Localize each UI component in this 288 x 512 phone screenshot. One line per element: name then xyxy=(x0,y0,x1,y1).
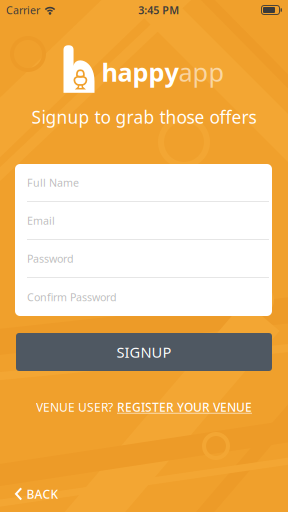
staticText: Full Name xyxy=(27,175,79,190)
staticText: app xyxy=(178,55,224,89)
button[interactable]: Full Name xyxy=(15,164,272,202)
button[interactable]: Confirm Password xyxy=(15,278,272,316)
button[interactable]: REGISTER YOUR VENUE xyxy=(117,399,252,415)
staticText: Email xyxy=(27,213,55,228)
button[interactable]: BACK xyxy=(0,479,70,509)
staticText: Carrier xyxy=(6,3,40,17)
button[interactable]: SIGNUP xyxy=(16,333,272,371)
staticText: REGISTER YOUR VENUE xyxy=(117,399,252,415)
staticText: Confirm Password xyxy=(27,290,117,304)
staticText: Password xyxy=(27,251,74,266)
staticText: BACK xyxy=(26,486,58,502)
staticText: VENUE USER? xyxy=(36,399,113,415)
button[interactable]: Password xyxy=(15,240,272,278)
staticText: SIGNUP xyxy=(116,342,171,362)
staticText: Signup to grab those offers xyxy=(31,105,256,128)
button[interactable]: Email xyxy=(15,202,272,240)
staticText: 3:45 PM xyxy=(138,3,179,17)
staticText: happy xyxy=(101,55,178,89)
